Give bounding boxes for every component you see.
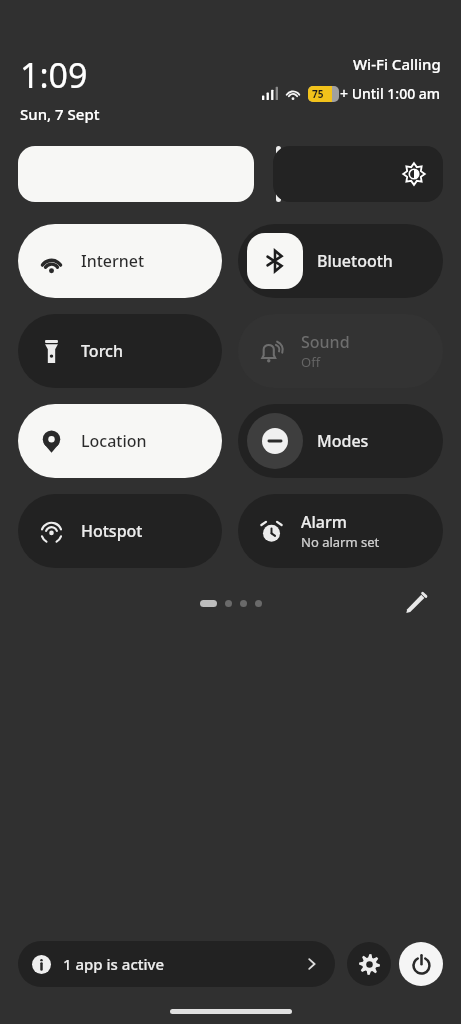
button[interactable]: Power [399,942,443,986]
other: Brightness [403,163,425,185]
button[interactable]: Brightness [18,146,443,202]
button[interactable]: Sound Notifications [238,314,443,388]
staticText: 1:09 [20,52,88,98]
staticText: 75 [312,87,324,101]
staticText: Modes [317,430,369,452]
staticText: No alarm set [301,533,380,551]
staticText: + Until 1:00 am [340,84,441,103]
button[interactable]: Hotspot [18,494,222,568]
button[interactable]: Alarm [238,494,443,568]
button[interactable]: Location [18,404,222,478]
button[interactable]: Internet [18,224,222,298]
staticText: Wi-Fi Calling [353,54,441,74]
staticText: 1 app is active [63,954,165,974]
button[interactable]: Modes [238,404,443,478]
button[interactable]: 1 app is active [18,941,335,987]
staticText: Location [81,430,147,452]
staticText: Bluetooth [317,250,393,272]
button[interactable]: Torch [18,314,222,388]
staticText: Torch [81,340,123,362]
button[interactable]: Bluetooth [238,224,443,298]
staticText: Hotspot [81,520,143,542]
staticText: Alarm [301,511,347,533]
staticText: Internet [81,250,145,272]
button[interactable]: Edit tiles [401,588,431,618]
staticText: Off [301,353,321,371]
button[interactable]: Settings [347,942,391,986]
staticText: Sun, 7 Sept [20,104,100,124]
staticText: Sound Notifications [301,331,433,353]
